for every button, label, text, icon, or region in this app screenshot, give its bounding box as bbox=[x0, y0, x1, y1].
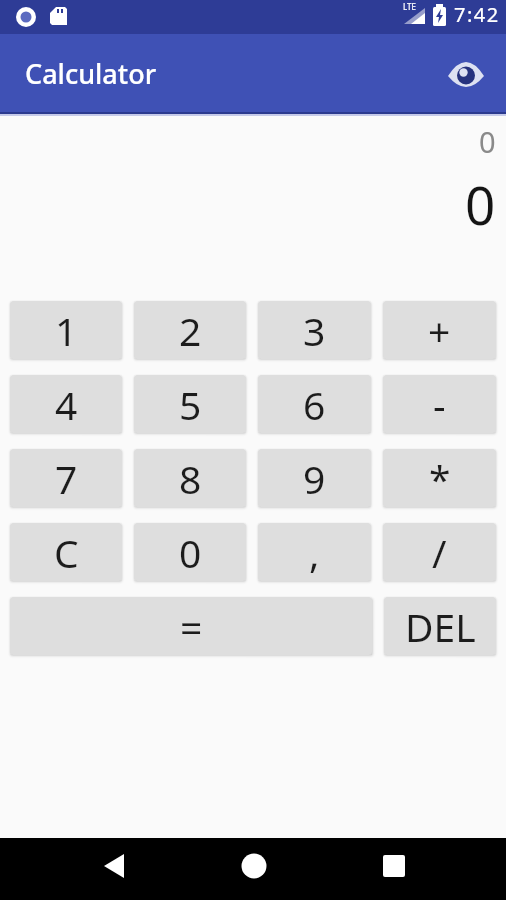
staticText: = bbox=[180, 600, 203, 653]
staticText: 2 bbox=[179, 304, 202, 357]
button[interactable] bbox=[448, 61, 485, 89]
staticText: 5 bbox=[179, 378, 202, 431]
button[interactable] bbox=[168, 838, 337, 900]
staticText: 1 bbox=[55, 304, 78, 357]
button[interactable]: C bbox=[10, 523, 122, 581]
button[interactable]: , bbox=[258, 523, 371, 581]
staticText: DEL bbox=[405, 600, 476, 653]
button[interactable]: * bbox=[383, 449, 496, 507]
staticText: 6 bbox=[303, 378, 326, 431]
staticText: 8 bbox=[179, 452, 202, 505]
button[interactable]: 5 bbox=[134, 375, 246, 433]
button[interactable]: 0 bbox=[134, 523, 246, 581]
staticText: 0 bbox=[479, 122, 496, 161]
staticText: 7:42 bbox=[454, 1, 500, 28]
button[interactable]: 1 bbox=[10, 301, 122, 359]
staticText: - bbox=[433, 378, 446, 431]
button[interactable] bbox=[337, 838, 506, 900]
button[interactable]: 9 bbox=[258, 449, 371, 507]
staticText: + bbox=[428, 304, 451, 357]
button[interactable]: DEL bbox=[384, 597, 496, 655]
staticText: LTE bbox=[403, 1, 416, 12]
button[interactable]: 4 bbox=[10, 375, 122, 433]
staticText: , bbox=[309, 526, 320, 579]
staticText: 9 bbox=[303, 452, 326, 505]
button[interactable]: = bbox=[10, 597, 372, 655]
button[interactable]: 3 bbox=[258, 301, 371, 359]
button[interactable]: 8 bbox=[134, 449, 246, 507]
staticText: 7 bbox=[55, 452, 78, 505]
staticText: / bbox=[432, 526, 447, 579]
button[interactable]: - bbox=[383, 375, 496, 433]
staticText: * bbox=[429, 452, 451, 505]
button[interactable]: 7 bbox=[10, 449, 122, 507]
staticText: 3 bbox=[303, 304, 326, 357]
staticText: Calculator bbox=[25, 55, 157, 92]
staticText: 0 bbox=[465, 168, 496, 240]
button[interactable] bbox=[0, 838, 168, 900]
button[interactable]: 6 bbox=[258, 375, 371, 433]
button[interactable]: + bbox=[383, 301, 496, 359]
staticText: 0 bbox=[179, 526, 202, 579]
button[interactable]: / bbox=[383, 523, 496, 581]
staticText: C bbox=[54, 526, 79, 579]
staticText: 4 bbox=[55, 378, 78, 431]
button[interactable]: 2 bbox=[134, 301, 246, 359]
